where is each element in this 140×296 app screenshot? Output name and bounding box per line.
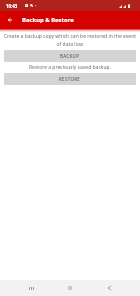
button[interactable]: RESTORE (4, 73, 136, 85)
button[interactable]: BACKUP (4, 50, 136, 62)
staticText: Restore a previously saved backup. (6, 64, 134, 71)
staticText: Create a backup copy which can be restor… (3, 33, 137, 47)
button[interactable]: Back (3, 13, 17, 27)
button[interactable]: Recents (19, 280, 43, 296)
staticText: BACKUP (60, 53, 80, 59)
staticText: Backup & Restore (22, 16, 74, 24)
button[interactable]: Back (97, 280, 121, 296)
button[interactable]: Home (58, 280, 82, 296)
staticText: RESTORE (59, 76, 81, 82)
staticText: 10:43 (6, 3, 18, 9)
